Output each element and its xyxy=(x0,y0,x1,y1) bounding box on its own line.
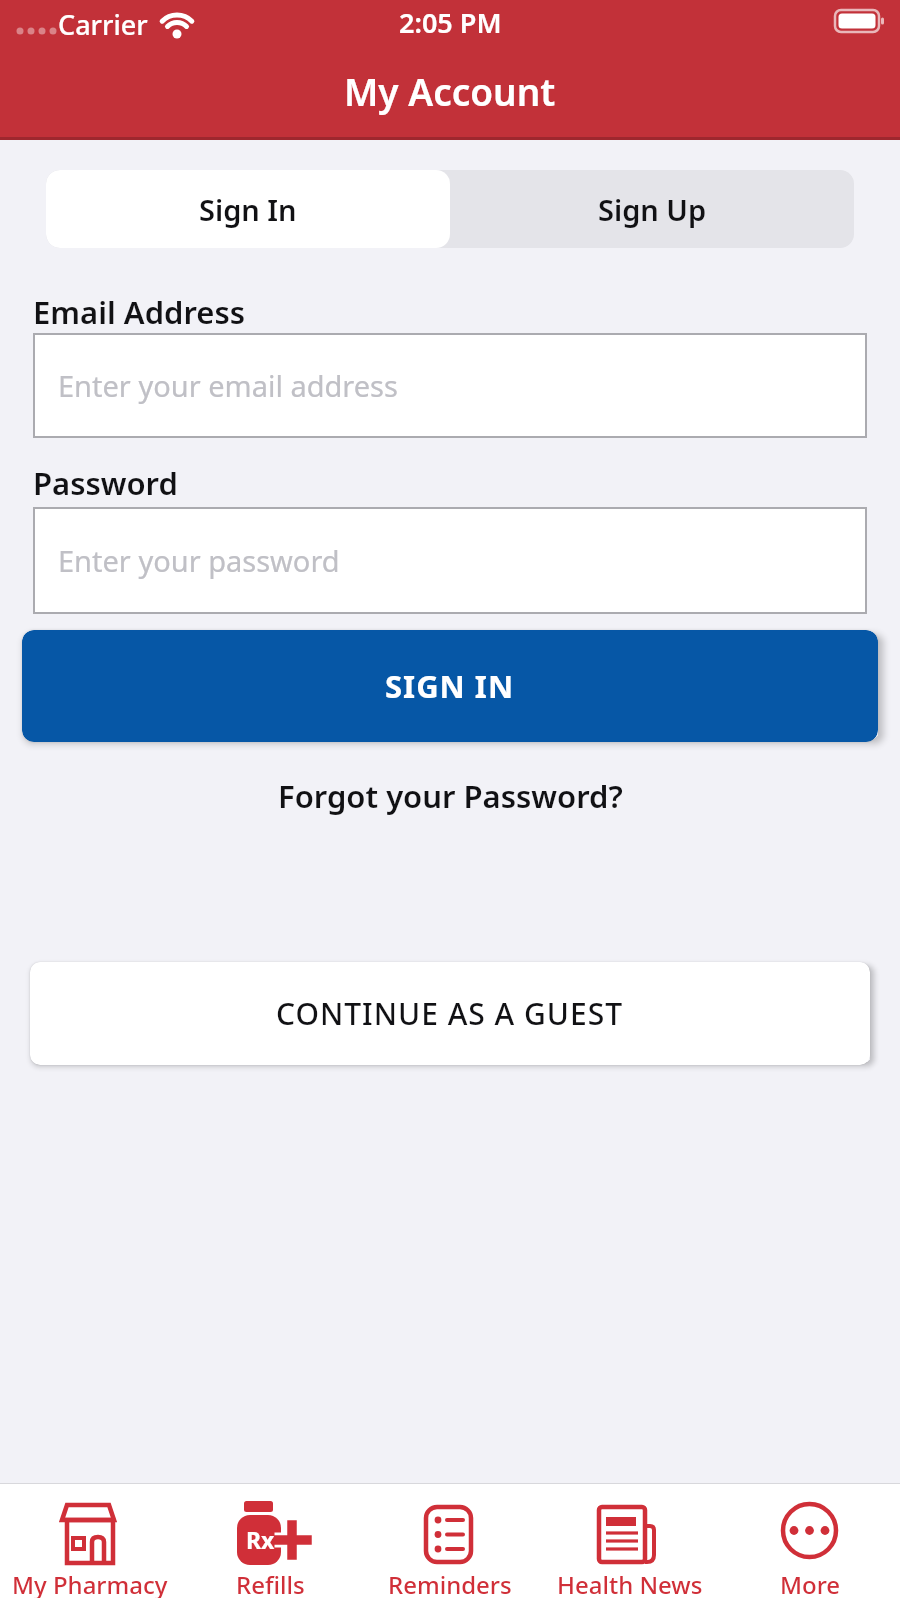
button[interactable]: Sign In xyxy=(46,170,450,248)
button[interactable]: Reminders xyxy=(360,1484,540,1598)
staticText: My Pharmacy xyxy=(12,1568,168,1598)
staticText: Refills xyxy=(236,1568,305,1598)
button[interactable]: SIGN IN xyxy=(22,630,878,742)
button[interactable]: Forgot your Password? xyxy=(0,775,900,817)
staticText: My Account xyxy=(344,66,556,116)
staticText: Sign Up xyxy=(598,190,707,229)
staticText: CONTINUE AS A GUEST xyxy=(276,993,624,1034)
staticText: Health News xyxy=(557,1568,703,1598)
staticText: Email Address xyxy=(33,291,245,333)
button[interactable]: Health News xyxy=(540,1484,720,1598)
staticText: More xyxy=(780,1568,841,1598)
staticText: Rx xyxy=(246,1524,275,1555)
staticText: Password xyxy=(33,462,178,504)
button[interactable]: Sign Up xyxy=(450,170,854,248)
staticText: Forgot your Password? xyxy=(278,775,623,817)
staticText: Enter your password xyxy=(58,541,340,580)
staticText: Sign In xyxy=(199,190,297,229)
staticText: Enter your email address xyxy=(58,366,398,405)
button[interactable]: Enter your email address xyxy=(33,333,867,438)
button[interactable]: My Pharmacy xyxy=(0,1484,180,1598)
staticText: SIGN IN xyxy=(385,665,515,707)
staticText: Carrier xyxy=(58,6,148,43)
button[interactable]: More xyxy=(720,1484,900,1598)
staticText: 2:05 PM xyxy=(399,4,502,41)
staticText: Reminders xyxy=(388,1568,512,1598)
button[interactable]: CONTINUE AS A GUEST xyxy=(30,962,870,1065)
button[interactable]: Rx xyxy=(180,1484,360,1598)
button[interactable]: Enter your password xyxy=(33,507,867,614)
